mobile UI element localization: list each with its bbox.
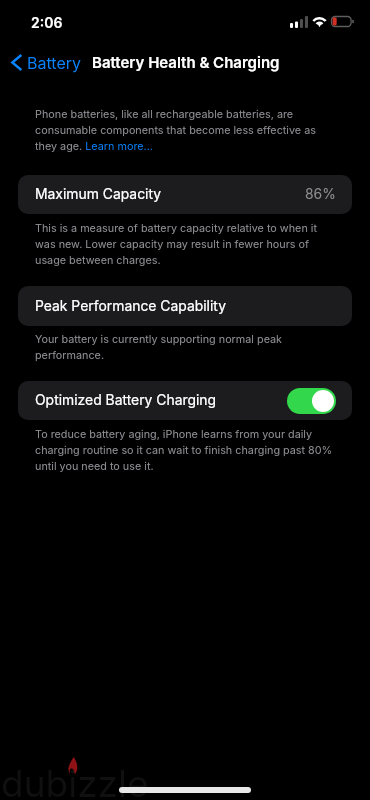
staticText: 86%: [305, 186, 336, 203]
button[interactable]: Optimized Battery Charging toggle: [287, 388, 336, 414]
staticText: To reduce battery aging, iPhone learns f…: [35, 428, 337, 473]
staticText: Maximum Capacity: [35, 186, 162, 203]
button[interactable]: Optimized Battery Charging: [18, 381, 352, 420]
button[interactable]: Maximum Capacity: [18, 175, 352, 214]
staticText: Battery Health & Charging: [92, 53, 280, 71]
button[interactable]: Peak Performance Capability: [18, 286, 352, 326]
staticText: Optimized Battery Charging: [35, 392, 217, 409]
staticText: dubizzle: [1, 761, 149, 800]
staticText: Phone batteries, like all rechargeable b…: [35, 108, 337, 153]
staticText: This is a measure of battery capacity re…: [35, 222, 337, 267]
staticText: Battery: [27, 53, 81, 72]
staticText: Your battery is currently supporting nor…: [35, 333, 337, 362]
staticText: Peak Performance Capability: [35, 298, 226, 315]
staticText: 2:06: [31, 14, 63, 31]
button[interactable]: Battery: [7, 51, 85, 78]
